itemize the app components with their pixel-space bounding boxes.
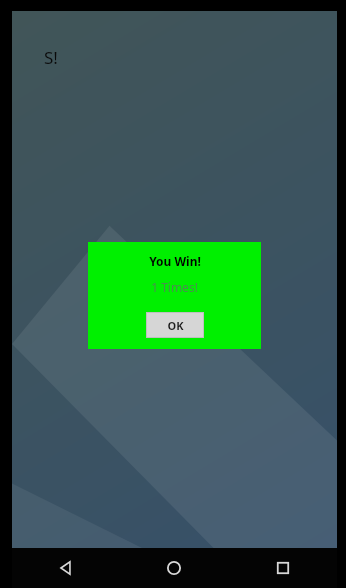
button[interactable]: You Win! <box>88 242 261 349</box>
staticText: 1 Times! <box>151 279 198 295</box>
button[interactable]: Home <box>120 548 228 588</box>
button[interactable]: OK <box>147 313 203 337</box>
staticText: You Win! <box>149 253 201 269</box>
button[interactable]: Recent apps <box>228 548 337 588</box>
button[interactable]: Back <box>12 548 120 588</box>
staticText: S! <box>44 46 58 69</box>
staticText: OK <box>167 318 184 333</box>
